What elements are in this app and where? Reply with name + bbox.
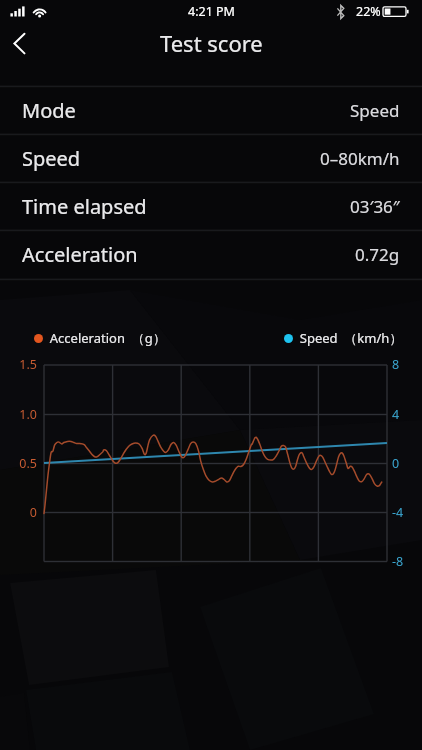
staticText: Speed: [22, 145, 81, 172]
staticText: Acceleration （g）: [43, 329, 166, 347]
staticText: -8: [392, 553, 422, 570]
staticText: Acceleration: [22, 241, 138, 268]
staticText: 03′36″: [350, 195, 400, 218]
staticText: -4: [392, 504, 422, 521]
button[interactable]: Speed: [0, 134, 422, 182]
staticText: 0: [392, 455, 422, 472]
staticText: Test score: [160, 28, 263, 58]
button[interactable]: Time elapsed: [0, 182, 422, 230]
staticText: Time elapsed: [22, 193, 147, 220]
staticText: Speed: [350, 99, 400, 122]
button[interactable]: Speed （km/h）: [284, 329, 403, 347]
staticText: 1.5: [0, 356, 37, 373]
staticText: 0–80km/h: [320, 147, 400, 170]
button[interactable]: Back: [0, 21, 44, 65]
staticText: 4:21 PM: [188, 3, 235, 20]
staticText: 0.5: [0, 455, 37, 472]
staticText: 0: [0, 504, 37, 521]
staticText: 4: [392, 406, 422, 423]
staticText: 22%: [356, 3, 381, 20]
staticText: 8: [392, 356, 422, 373]
staticText: Speed （km/h）: [293, 329, 403, 347]
staticText: Mode: [22, 97, 76, 124]
staticText: 1.0: [0, 406, 37, 423]
button[interactable]: Acceleration: [0, 230, 422, 278]
button[interactable]: Acceleration （g）: [34, 329, 166, 347]
staticText: 0.72g: [355, 243, 400, 266]
button[interactable]: Mode: [0, 86, 422, 134]
